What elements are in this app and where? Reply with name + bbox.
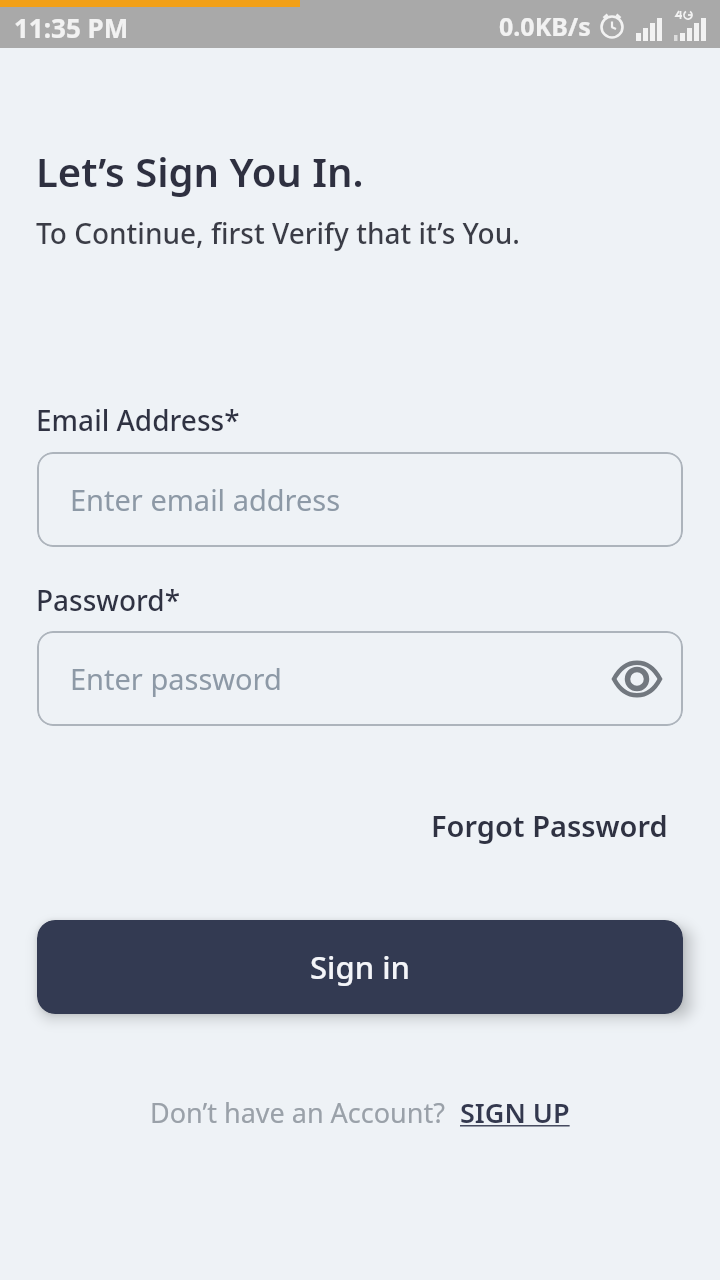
button[interactable] (611, 659, 663, 699)
button[interactable]: Enter email address (37, 452, 683, 547)
staticText: Let’s Sign You In. (36, 144, 364, 198)
staticText: Password* (36, 581, 181, 619)
staticText: Email Address* (36, 401, 240, 439)
button[interactable]: Sign in (37, 920, 683, 1014)
staticText: 0.0KB/s (499, 9, 591, 43)
staticText: Don’t have an Account? (150, 1094, 445, 1131)
button[interactable]: Forgot Password (431, 806, 668, 845)
staticText: Enter email address (70, 480, 341, 519)
button[interactable]: SIGN UP (460, 1094, 570, 1131)
staticText: Sign in (310, 946, 410, 988)
staticText: 11:35 PM (14, 10, 129, 45)
staticText: To Continue, first Verify that it’s You. (36, 214, 520, 252)
staticText: Enter password (70, 659, 282, 698)
button[interactable]: Enter password (37, 631, 683, 726)
